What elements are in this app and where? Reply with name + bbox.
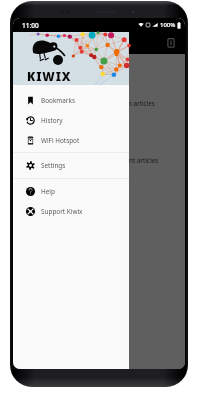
staticText: Support Kiwix (41, 207, 83, 216)
button[interactable]: Help (13, 181, 129, 201)
button[interactable]: Open tabs (164, 36, 178, 50)
staticText: Recent articles (115, 156, 159, 164)
staticText: 11:00 (22, 21, 39, 30)
staticText: WiFi Hotspot (41, 136, 80, 145)
staticText: Bookmarks (41, 96, 75, 105)
staticText: Random articles (107, 99, 155, 107)
button[interactable]: Settings (13, 155, 129, 175)
button[interactable]: Bookmarks (13, 90, 129, 110)
staticText: 100% (160, 21, 176, 29)
staticText: KIWIX (27, 68, 72, 84)
staticText: History (41, 116, 63, 125)
button[interactable]: History (13, 110, 129, 130)
button[interactable]: Support Kiwix (13, 201, 129, 221)
button[interactable]: WiFi Hotspot (13, 130, 129, 150)
staticText: Help (41, 187, 55, 196)
staticText: Settings (41, 161, 66, 170)
